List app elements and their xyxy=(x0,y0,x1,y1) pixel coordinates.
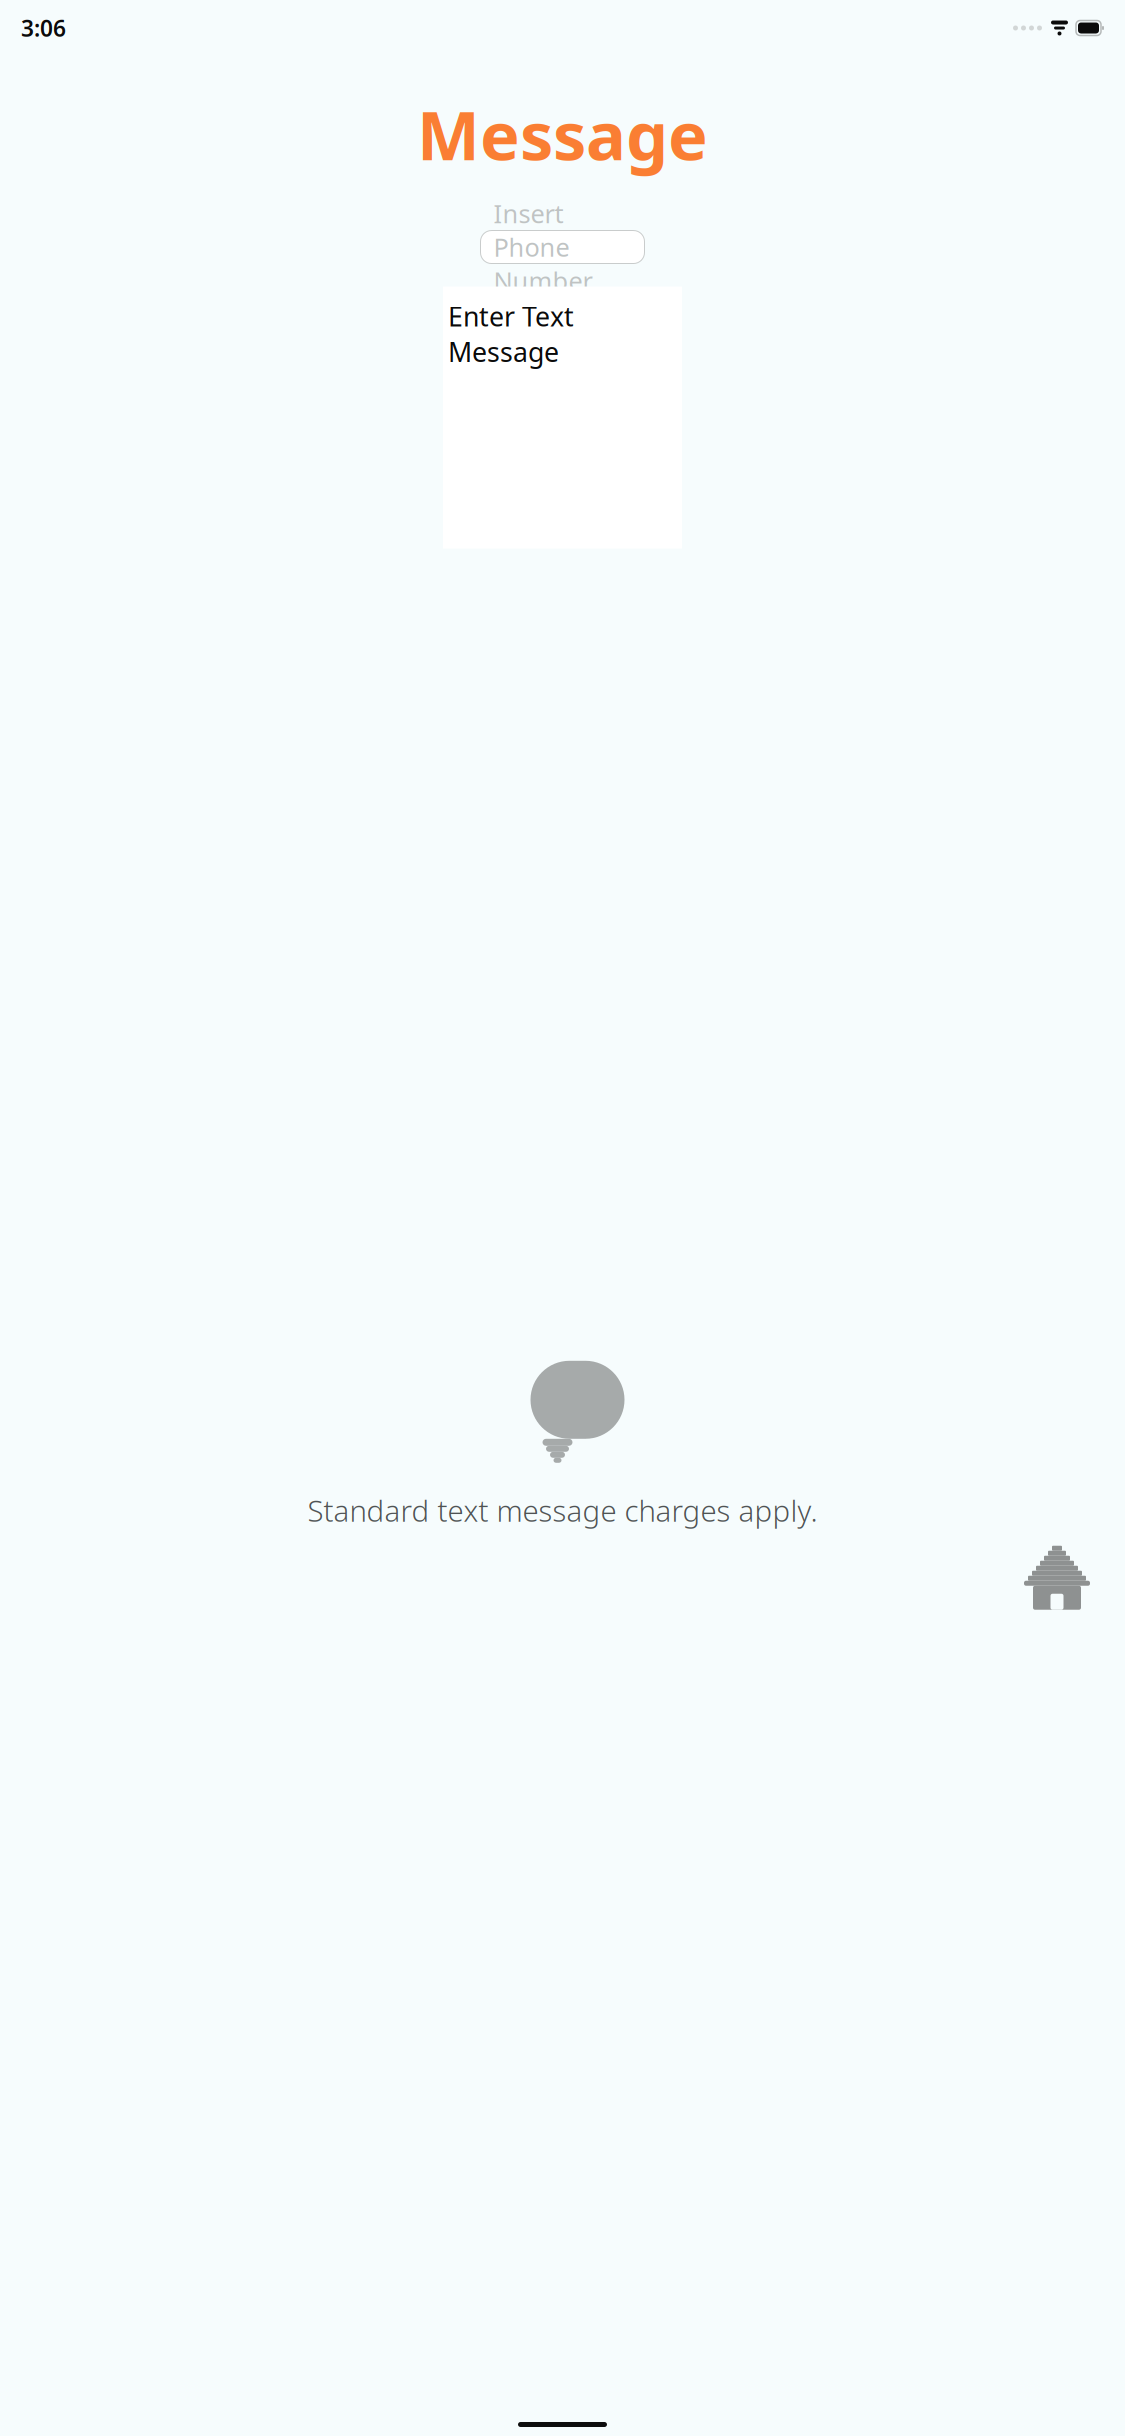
staticText: Standard text message charges apply. xyxy=(307,1491,817,1530)
staticText: Enter Text Message xyxy=(448,298,574,369)
staticText: Message xyxy=(417,90,708,178)
staticText: Insert Phone Number xyxy=(493,197,592,297)
button[interactable]: Send message xyxy=(530,1361,624,1463)
staticText: 3:06 xyxy=(21,13,66,43)
button[interactable]: Home xyxy=(1024,1546,1090,1610)
button[interactable]: Enter Text Message xyxy=(443,286,682,548)
button[interactable]: Insert Phone Number xyxy=(480,230,644,263)
